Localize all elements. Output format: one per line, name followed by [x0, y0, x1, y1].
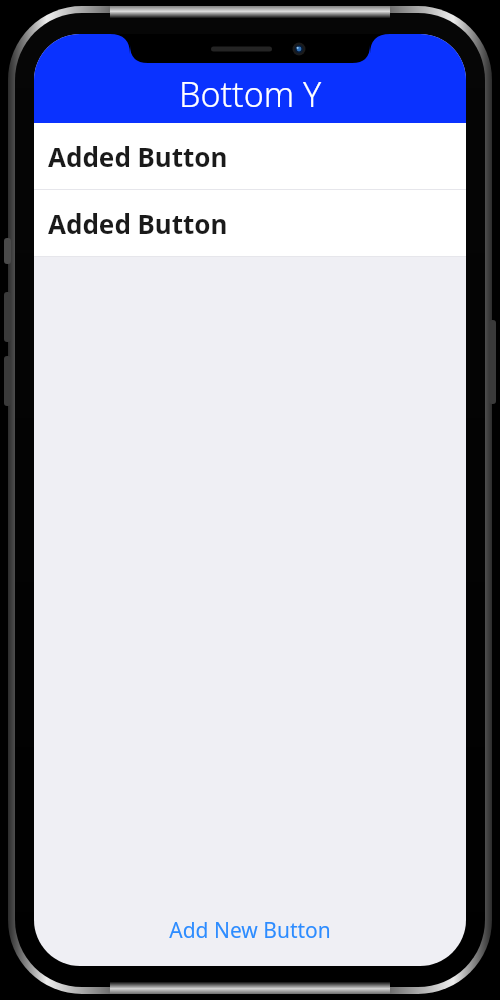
staticText: Bottom Y — [179, 71, 322, 117]
button[interactable]: Added Button — [34, 123, 466, 189]
staticText: Added Button — [48, 206, 228, 241]
staticText: Add New Button — [169, 916, 331, 945]
button[interactable]: Added Button — [34, 190, 466, 256]
staticText: Added Button — [48, 139, 228, 174]
button[interactable]: Add New Button — [34, 904, 466, 956]
other: Front camera and speaker notch — [34, 34, 466, 74]
